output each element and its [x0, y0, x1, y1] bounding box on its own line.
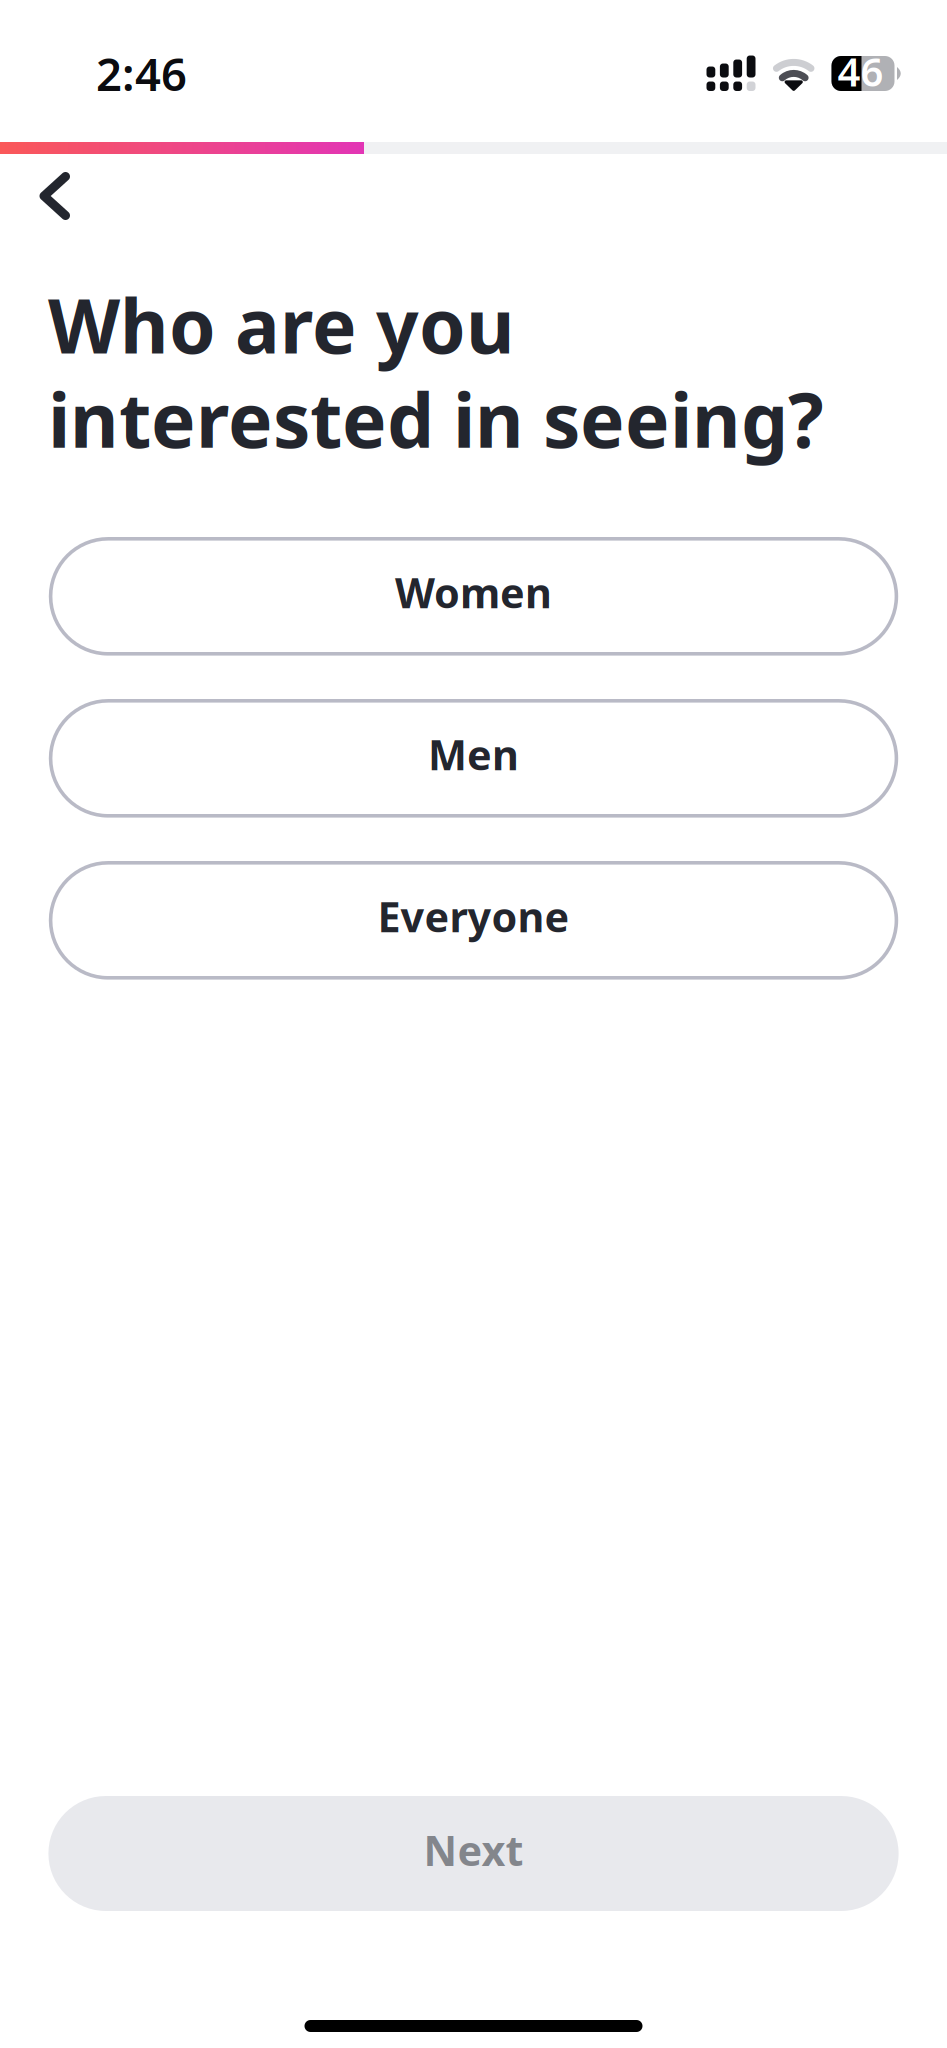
button[interactable]: Back — [0, 154, 96, 234]
button[interactable]: Men — [51, 701, 896, 816]
staticText: Everyone — [377, 889, 569, 944]
staticText: 46 — [837, 44, 883, 97]
staticText: Who are you interested in seeing? — [48, 275, 824, 468]
button[interactable]: Women — [51, 539, 896, 654]
staticText: Women — [395, 565, 552, 620]
staticText: 2:46 — [96, 43, 187, 104]
staticText: Men — [428, 727, 519, 782]
staticText: Next — [423, 1823, 523, 1877]
button[interactable]: Everyone — [51, 863, 896, 978]
button[interactable]: Next — [48, 1796, 899, 1911]
